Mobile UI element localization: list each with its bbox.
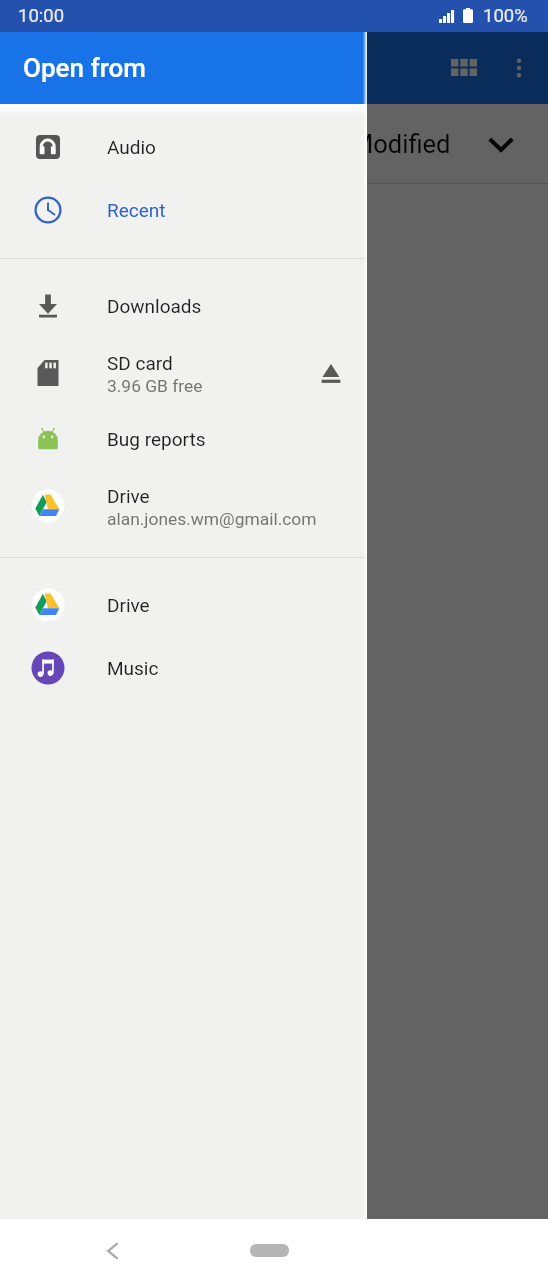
button[interactable]: Modified (351, 129, 515, 159)
staticText: 3.96 GB free (107, 376, 203, 396)
button[interactable]: Music (0, 636, 367, 700)
staticText: Audio (107, 136, 156, 158)
button[interactable]: Recent (0, 178, 367, 242)
staticText: Modified (351, 129, 451, 159)
staticText: Music (107, 657, 159, 679)
button[interactable]: SD card (0, 337, 367, 409)
button[interactable]: More options (495, 44, 543, 92)
staticText: Drive (107, 594, 150, 616)
button[interactable]: Drive (0, 574, 367, 636)
staticText: Bug reports (107, 428, 206, 450)
button[interactable]: Audio (0, 116, 367, 178)
staticText: 100% (483, 5, 528, 27)
button[interactable]: Grid view (440, 44, 488, 92)
staticText: alan.jones.wm@gmail.com (107, 509, 317, 529)
button[interactable]: Downloads (0, 274, 367, 337)
staticText: Downloads (107, 295, 202, 317)
staticText: Open from (23, 53, 146, 83)
staticText: 10:00 (18, 5, 65, 27)
button[interactable]: Home (250, 1244, 289, 1257)
button[interactable]: Drive (0, 469, 367, 542)
staticText: Drive (107, 485, 150, 507)
button[interactable]: Bug reports (0, 409, 367, 469)
button[interactable]: Back (93, 1231, 133, 1271)
staticText: SD card (107, 352, 173, 374)
staticText: Recent (107, 199, 166, 221)
